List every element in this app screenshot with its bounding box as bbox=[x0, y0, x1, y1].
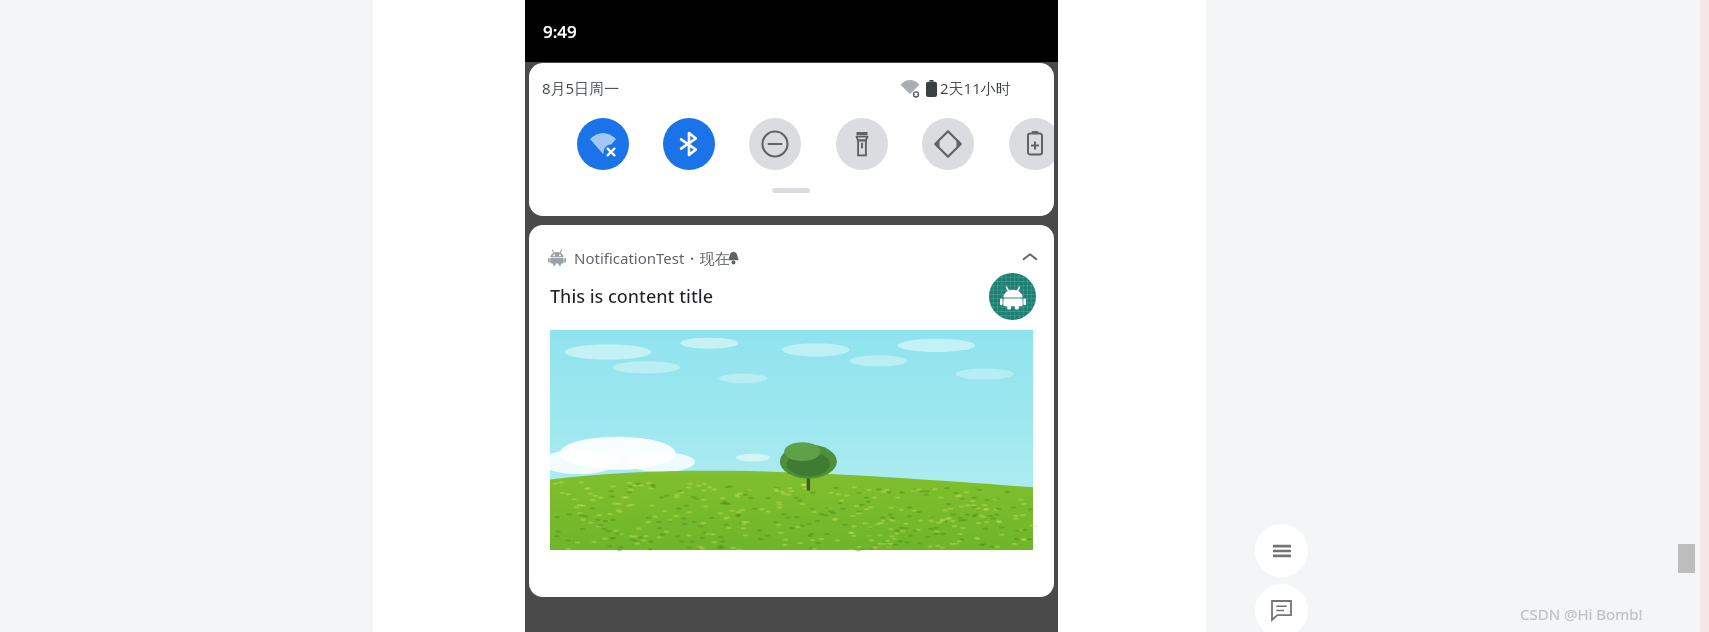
button[interactable]: Collapse bbox=[1012, 239, 1048, 275]
button[interactable]: Wi-Fi bbox=[577, 118, 629, 170]
staticText: NotificationTest・现在 bbox=[574, 248, 730, 268]
staticText: This is content title bbox=[550, 284, 714, 309]
button[interactable]: Menu bbox=[1255, 524, 1308, 577]
button[interactable]: Comments bbox=[1255, 584, 1308, 632]
staticText: 2天11小时 bbox=[940, 78, 1011, 98]
staticText: 8月5日周一 bbox=[542, 78, 620, 98]
button[interactable]: Flashlight bbox=[836, 118, 888, 170]
button[interactable]: NotificationTest・现在 bbox=[529, 225, 1054, 597]
staticText: 9:49 bbox=[543, 20, 577, 43]
button[interactable]: Battery saver bbox=[1009, 118, 1054, 170]
button[interactable]: Auto rotate bbox=[922, 118, 974, 170]
button[interactable]: Bluetooth bbox=[663, 118, 715, 170]
staticText: CSDN @Hi Bomb! bbox=[1520, 604, 1643, 624]
button[interactable]: Do not disturb bbox=[749, 118, 801, 170]
